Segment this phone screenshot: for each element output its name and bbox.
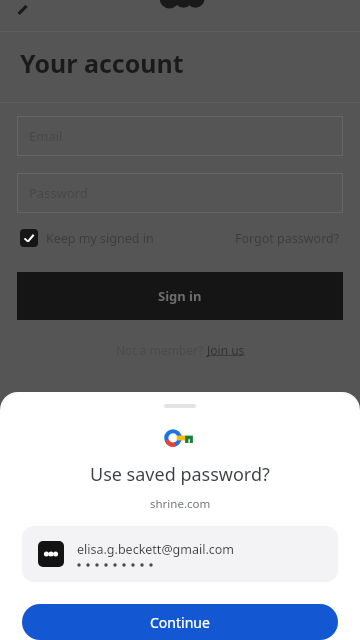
staticText: shrine.com: [150, 496, 211, 512]
button[interactable]: Join us: [207, 342, 245, 358]
staticText: Your account: [20, 46, 184, 80]
staticText: elisa.g.beckett@gmail.com: [77, 541, 235, 558]
button[interactable]: Password: [17, 173, 343, 213]
staticText: Keep my signed in: [46, 230, 154, 247]
button[interactable]: Continue: [22, 604, 338, 640]
button[interactable]: Keep my signed in: [20, 229, 154, 247]
button[interactable]: Sign in: [17, 272, 343, 320]
button[interactable]: Back: [4, 0, 36, 26]
staticText: Join us: [207, 342, 245, 358]
staticText: Continue: [150, 613, 210, 632]
button[interactable]: Forgot password?: [235, 230, 340, 247]
button[interactable]: elisa.g.beckett@gmail.com: [22, 526, 338, 582]
staticText: Forgot password?: [235, 230, 340, 247]
staticText: Sign in: [158, 287, 202, 305]
staticText: Email: [29, 127, 63, 145]
staticText: Password: [29, 184, 88, 202]
other: Google Password Manager: [165, 430, 195, 446]
staticText: Not a member?: [116, 342, 207, 358]
button[interactable]: Email: [17, 116, 343, 156]
staticText: Use saved password?: [90, 462, 270, 487]
